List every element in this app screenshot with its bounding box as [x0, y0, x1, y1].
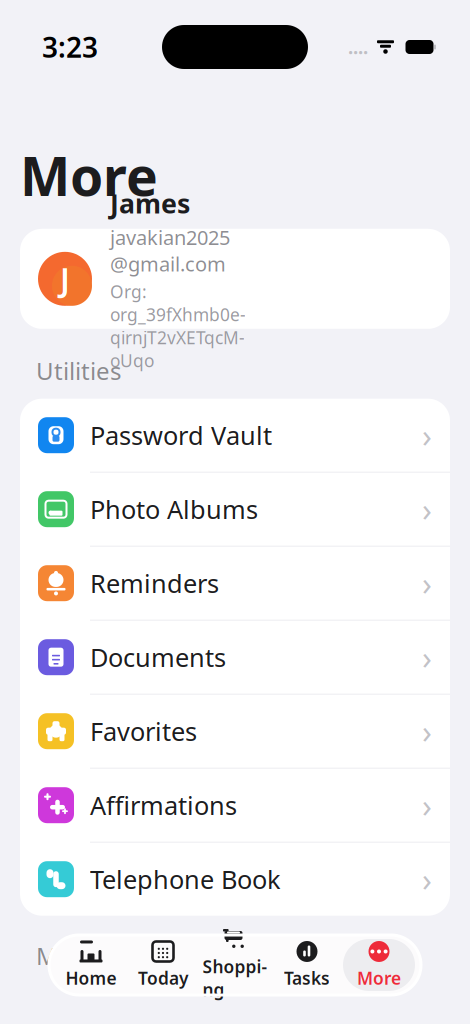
- staticText: Media & Learning: [36, 940, 237, 972]
- staticText: ›: [422, 710, 432, 752]
- staticText: ›: [422, 636, 432, 678]
- staticText: ›: [422, 562, 432, 604]
- staticText: More: [20, 140, 158, 211]
- staticText: Org: org_39fXhmb0eqirnjT2vXETqcMoUqo: [110, 280, 246, 372]
- button[interactable]: Shopping: [199, 939, 271, 991]
- button[interactable]: J: [20, 229, 450, 329]
- staticText: Home: [65, 966, 116, 989]
- button[interactable]: Telephone Book: [20, 843, 450, 916]
- button[interactable]: Tasks: [271, 939, 343, 991]
- staticText: Favorites: [90, 714, 197, 748]
- staticText: 3:23: [42, 28, 98, 66]
- staticText: Password Vault: [90, 418, 272, 452]
- staticText: javakian2025@gmail.com: [110, 224, 230, 277]
- staticText: Utilities: [36, 355, 121, 387]
- staticText: James: [110, 185, 190, 221]
- button[interactable]: Home: [55, 939, 127, 991]
- staticText: J: [60, 258, 70, 300]
- staticText: ›: [422, 488, 432, 530]
- button[interactable]: Photo Albums: [20, 473, 450, 547]
- staticText: Shopping: [202, 955, 267, 1001]
- staticText: More: [357, 966, 401, 989]
- staticText: ....: [348, 35, 368, 59]
- staticText: Photo Albums: [90, 492, 258, 526]
- button[interactable]: Affirmations: [20, 769, 450, 843]
- button[interactable]: More: [343, 939, 415, 991]
- staticText: Today: [138, 966, 188, 989]
- staticText: Reminders: [90, 566, 219, 600]
- staticText: ›: [422, 858, 432, 900]
- staticText: ›: [422, 414, 432, 456]
- staticText: Tasks: [284, 966, 330, 989]
- staticText: Telephone Book: [90, 862, 281, 896]
- button[interactable]: Favorites: [20, 695, 450, 769]
- button[interactable]: Password Vault: [20, 399, 450, 473]
- button[interactable]: Documents: [20, 621, 450, 695]
- staticText: ›: [422, 784, 432, 826]
- button[interactable]: Reminders: [20, 547, 450, 621]
- button[interactable]: Today: [127, 939, 199, 991]
- staticText: Documents: [90, 640, 226, 674]
- staticText: Affirmations: [90, 788, 237, 822]
